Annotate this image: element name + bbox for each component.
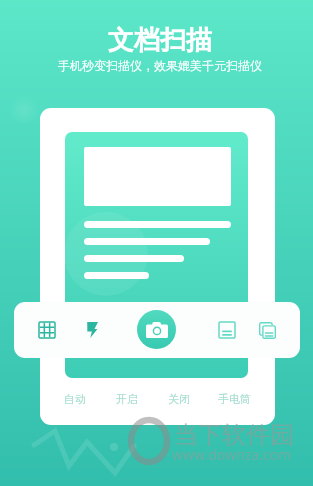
staticText: 文档扫描: [108, 24, 212, 57]
button[interactable]: Single page: [213, 316, 241, 344]
staticText: 当下软件园: [174, 420, 294, 450]
button[interactable]: Grid: [33, 316, 61, 344]
staticText: 关闭: [168, 392, 190, 406]
button[interactable]: 关闭: [166, 390, 192, 408]
button[interactable]: 自动: [62, 390, 88, 408]
button[interactable]: Flash: [78, 316, 106, 344]
staticText: www.downza.com: [172, 445, 292, 464]
staticText: 自动: [64, 392, 86, 406]
staticText: 开启: [116, 392, 138, 406]
staticText: 手机秒变扫描仪，效果媲美千元扫描仪: [58, 58, 262, 73]
button[interactable]: Multi page: [253, 316, 281, 344]
staticText: 手电筒: [218, 392, 251, 406]
button[interactable]: 开启: [114, 390, 140, 408]
button[interactable]: Capture: [137, 310, 176, 349]
button[interactable]: 手电筒: [216, 390, 253, 408]
